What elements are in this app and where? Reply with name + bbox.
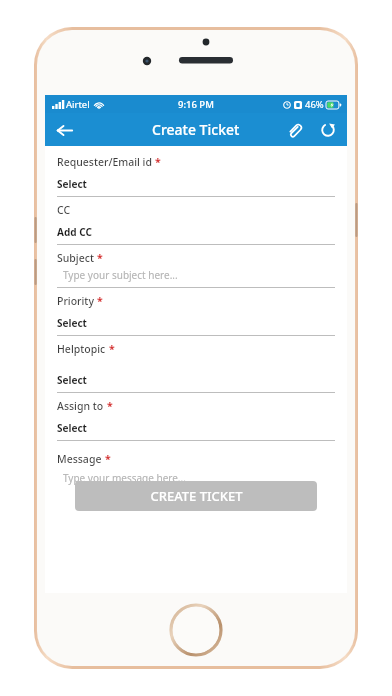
staticText: Create Ticket (152, 120, 240, 139)
button[interactable]: CC (45, 203, 347, 251)
button[interactable]: Helptopic (45, 342, 347, 399)
staticText: Subject (57, 251, 94, 265)
button[interactable]: Assign to (45, 399, 347, 447)
button[interactable]: Attach file (280, 116, 308, 144)
staticText: Assign to (57, 399, 104, 413)
staticText: Message (57, 452, 102, 466)
staticText: * (109, 342, 115, 356)
staticText: * (97, 294, 103, 308)
staticText: Helptopic (57, 342, 106, 356)
button[interactable]: Back (49, 115, 79, 145)
button[interactable]: Refresh (314, 116, 342, 144)
staticText: * (97, 251, 103, 265)
button[interactable]: Priority (45, 294, 347, 342)
staticText: Type your message here... (63, 471, 186, 485)
staticText: * (155, 155, 161, 169)
staticText: CREATE TICKET (150, 487, 243, 505)
staticText: Select (57, 316, 87, 330)
staticText: Requester/Email id (57, 155, 152, 169)
staticText: * (107, 399, 113, 413)
staticText: Select (57, 177, 87, 191)
staticText: 46% (305, 98, 324, 111)
staticText: Type your subject here... (63, 268, 178, 282)
staticText: CC (57, 203, 71, 217)
staticText: 9:16 PM (178, 98, 214, 111)
button[interactable]: Requester/Email id (45, 155, 347, 203)
staticText: Select (57, 373, 87, 387)
staticText: Add CC (57, 225, 92, 239)
staticText: * (105, 452, 111, 466)
staticText: Airtel (66, 98, 90, 111)
button[interactable]: CREATE TICKET (75, 481, 317, 511)
staticText: Select (57, 421, 87, 435)
button[interactable]: Subject (45, 251, 347, 294)
staticText: Priority (57, 294, 94, 308)
